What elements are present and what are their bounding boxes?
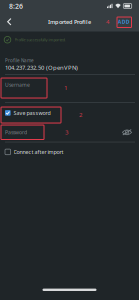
staticText: Connect after import (14, 148, 64, 156)
staticText: 8:26 (9, 1, 23, 11)
staticText: Save password (14, 109, 51, 117)
button[interactable]: Username (0, 75, 139, 102)
staticText: 4 (106, 17, 110, 26)
staticText: Profile Name (5, 57, 34, 64)
staticText: 104.237.232.50 (OpenVPN) (5, 63, 78, 71)
button[interactable]: Save password (0, 103, 139, 123)
staticText: 1 (64, 83, 68, 92)
button[interactable]: Back (3, 12, 16, 31)
staticText: Profile successfully imported. (14, 37, 65, 42)
button[interactable]: Show password (122, 129, 132, 136)
button[interactable]: Connect after import (0, 142, 139, 161)
staticText: Password (5, 129, 27, 136)
staticText: Imported Profile (48, 18, 91, 25)
staticText: 3 (65, 128, 69, 136)
staticText: Username (5, 81, 30, 88)
button[interactable]: ADD (116, 16, 131, 27)
staticText: 2 (79, 110, 83, 119)
staticText: ADD (118, 18, 130, 25)
